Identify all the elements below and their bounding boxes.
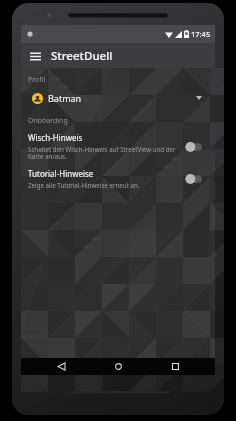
button[interactable]: Recent apps — [158, 358, 192, 375]
staticText: Profil — [28, 75, 46, 85]
staticText: Zeige alle Tutorial-Hinweise erneut an. — [28, 181, 140, 189]
staticText: Wisch-Hinweis — [28, 132, 83, 143]
staticText: 17:45 — [191, 29, 211, 39]
button[interactable]: Batman — [28, 89, 208, 107]
staticText: Tutorial-Hinweise — [28, 168, 94, 179]
button[interactable]: Open navigation drawer — [25, 46, 45, 66]
staticText: Batman — [48, 92, 82, 104]
button[interactable]: Wisch-Hinweis — [28, 132, 208, 161]
staticText: Schaltet den Wisch-Hinweis auf StreetVie… — [28, 145, 177, 161]
staticText: StreetDuell — [51, 48, 113, 64]
button[interactable]: Back — [44, 358, 78, 375]
button[interactable]: Select profile — [192, 91, 206, 105]
button[interactable]: Toggle setting — [183, 140, 205, 154]
staticText: Onboarding — [28, 116, 68, 126]
button[interactable]: Tutorial-Hinweise — [28, 168, 208, 189]
button[interactable]: Toggle setting — [183, 172, 205, 186]
button[interactable]: Home — [101, 358, 135, 375]
